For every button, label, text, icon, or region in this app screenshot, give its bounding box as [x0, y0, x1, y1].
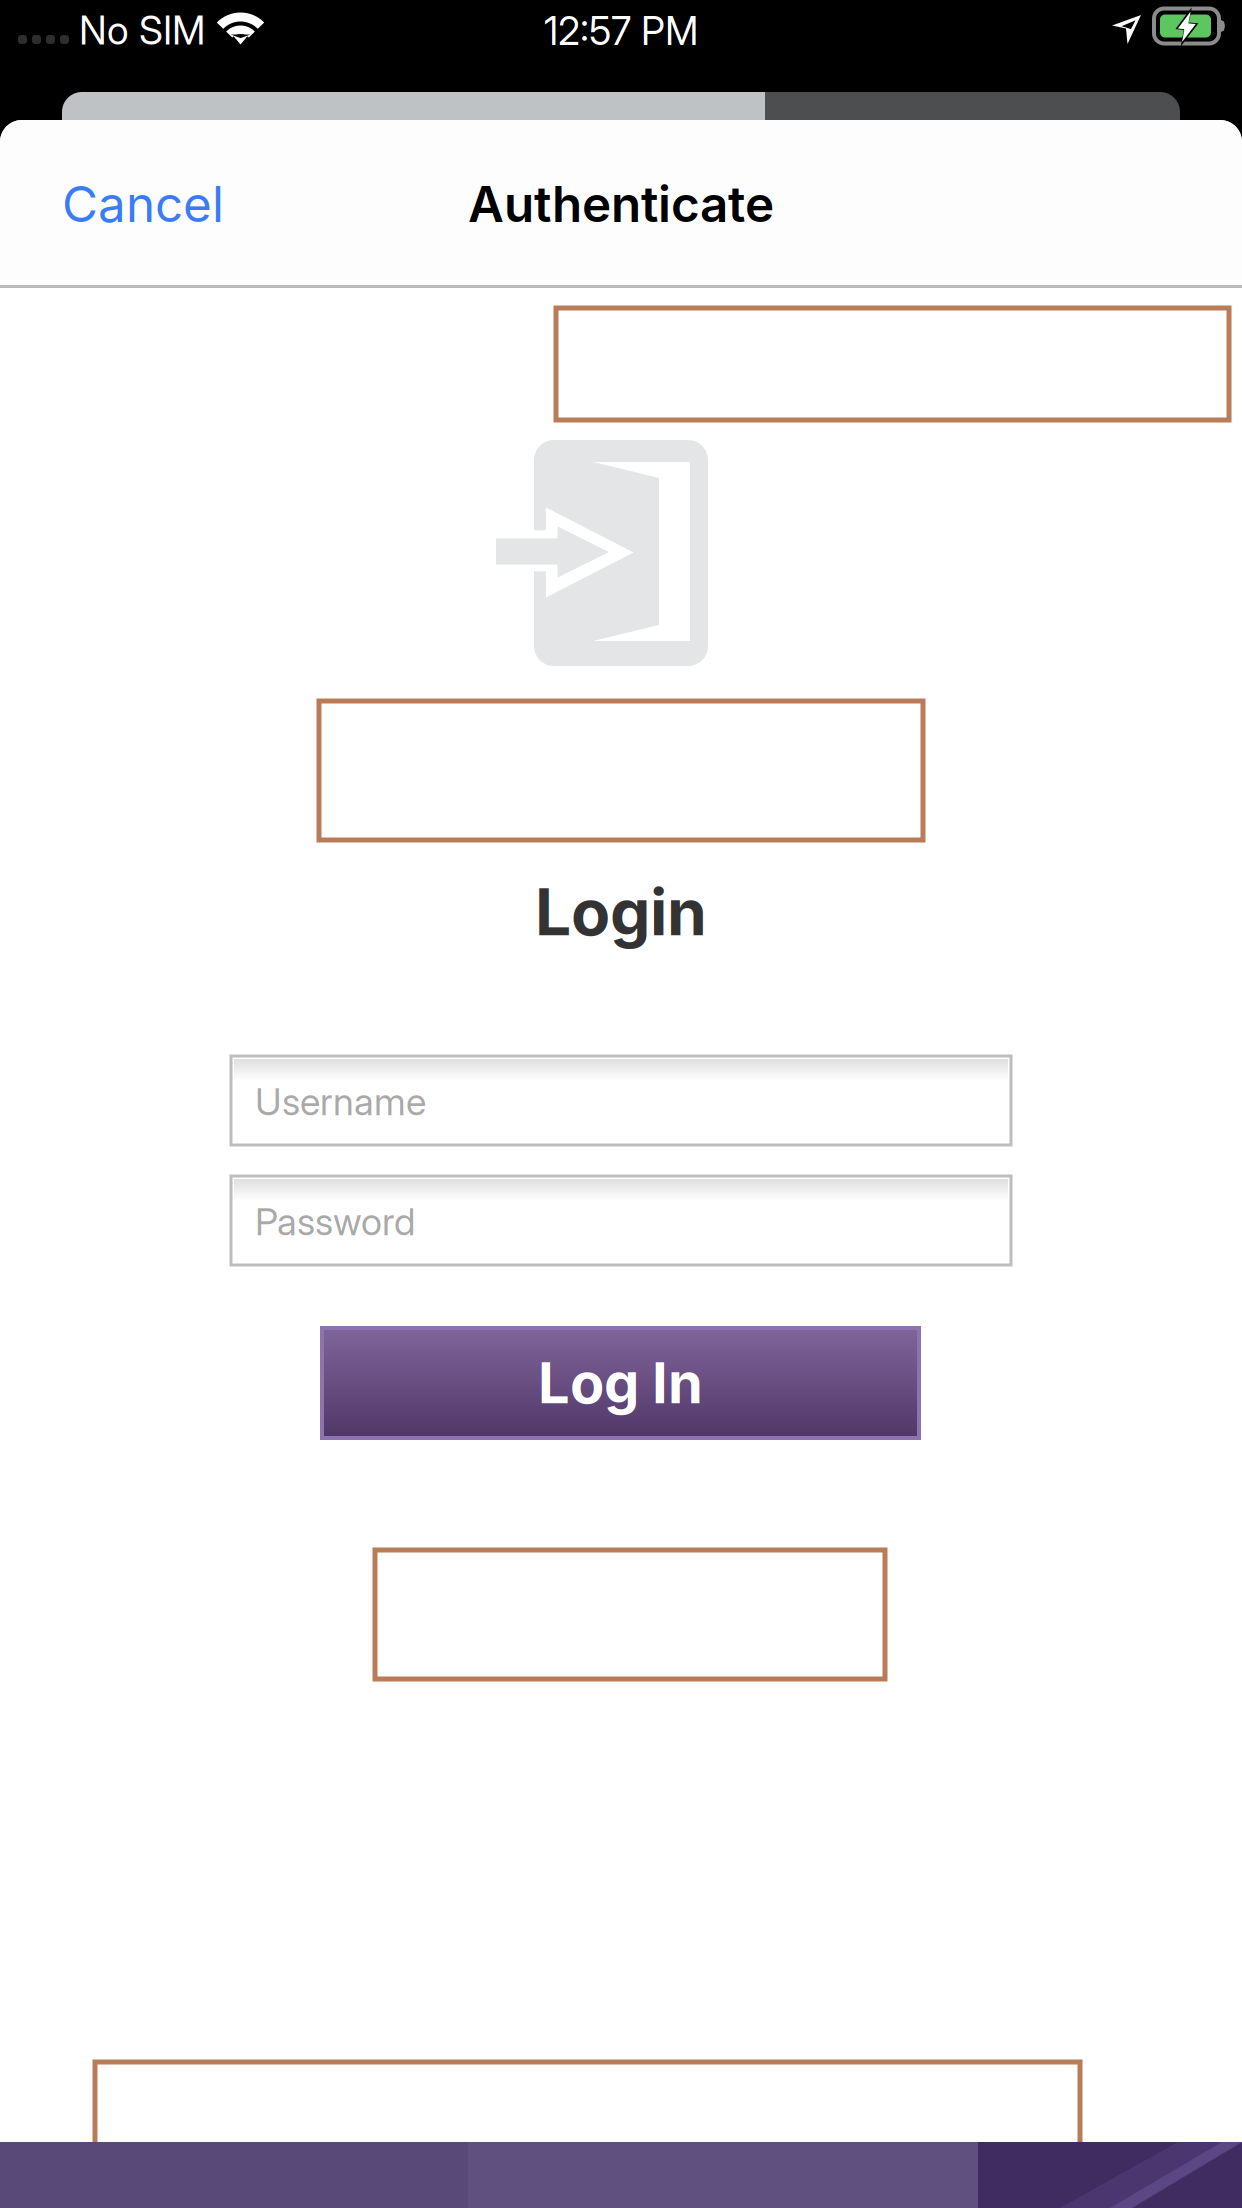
staticText: Cancel — [62, 174, 224, 234]
button[interactable]: Log In — [320, 1326, 921, 1440]
staticText: Login — [535, 873, 707, 951]
staticText: No SIM — [79, 7, 205, 54]
staticText: Username — [255, 1079, 426, 1124]
button[interactable]: Cancel — [62, 167, 262, 241]
staticText: 12:57 PM — [544, 8, 698, 54]
staticText: Authenticate — [468, 174, 774, 234]
button[interactable]: Username — [231, 1056, 1011, 1145]
button[interactable]: Password — [231, 1176, 1011, 1265]
staticText: Password — [255, 1199, 415, 1244]
staticText: Log In — [538, 1349, 703, 1417]
